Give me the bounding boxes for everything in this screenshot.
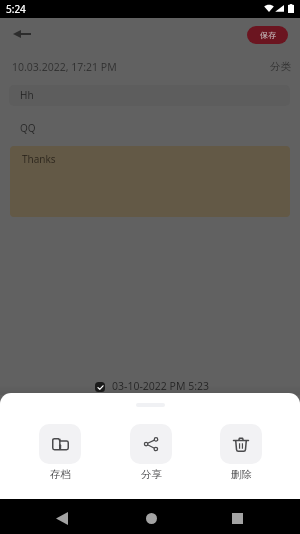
button[interactable]: 保存 xyxy=(247,26,288,44)
staticText: 10.03.2022, 17:21 PM xyxy=(12,60,117,74)
other: Delete xyxy=(220,424,262,464)
staticText: 分类 xyxy=(270,60,291,73)
button[interactable]: Share xyxy=(124,424,178,481)
staticText: 保存 xyxy=(260,30,276,40)
button[interactable]: Back xyxy=(4,18,40,50)
button[interactable]: Hh xyxy=(9,85,290,106)
button[interactable]: Back xyxy=(47,503,77,533)
staticText: 5:24 xyxy=(6,2,26,16)
button[interactable]: Recents xyxy=(222,503,252,533)
staticText: Hh xyxy=(20,88,34,102)
staticText: 删除 xyxy=(231,468,252,481)
staticText: QQ xyxy=(20,121,36,135)
other: Share xyxy=(130,424,172,464)
staticText: 03-10-2022 PM 5:23 xyxy=(112,379,209,393)
button[interactable]: Delete xyxy=(214,424,268,481)
staticText: 分享 xyxy=(141,468,162,481)
staticText: Thanks xyxy=(22,152,56,166)
button[interactable]: 分类 xyxy=(264,55,296,77)
button[interactable]: Archive xyxy=(33,424,87,481)
button[interactable]: Home xyxy=(136,503,166,533)
other: Archive xyxy=(39,424,81,464)
button[interactable]: Reminder set xyxy=(95,382,105,392)
staticText: 存档 xyxy=(50,468,71,481)
